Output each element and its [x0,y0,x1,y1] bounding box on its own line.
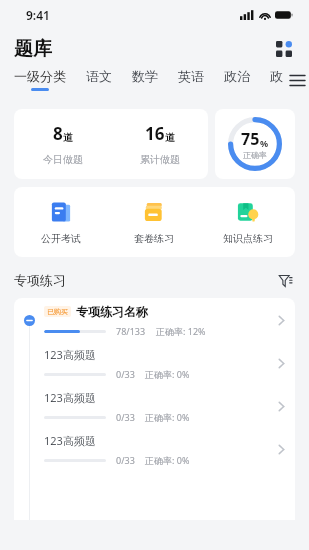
staticText: 专项练习 [14,272,66,288]
button[interactable]: 政 [263,68,290,88]
button[interactable]: 数学 [125,68,165,88]
staticText: 9:41 [26,7,50,23]
button[interactable]: 已购买 [14,298,295,342]
staticText: 8 [53,122,63,145]
staticText: 道 [165,131,175,144]
staticText: 0/33 [116,368,135,380]
staticText: 123高频题 [44,347,96,362]
button[interactable]: 套卷练习 [107,187,201,257]
staticText: % [260,137,269,149]
staticText: 正确率: 0% [145,411,190,423]
button[interactable]: 123高频题 [14,385,295,428]
staticText: 一级分类 [14,68,66,84]
staticText: 累计做题 [140,153,180,166]
staticText: 道 [63,131,73,144]
staticText: 公开考试 [41,232,81,245]
button[interactable]: 公开考试 [14,187,107,257]
button[interactable]: 75 [215,109,295,179]
button[interactable]: 筛选 [275,270,295,290]
button[interactable]: 政治 [217,68,257,88]
staticText: 英语 [178,68,204,84]
staticText: 0/33 [116,454,135,466]
staticText: 123高频题 [44,390,96,405]
staticText: 正确率: 0% [145,368,190,380]
staticText: 今日做题 [43,153,83,166]
staticText: 16 [145,122,165,145]
button[interactable]: 语文 [79,68,119,88]
button[interactable]: 123高频题 [14,428,295,471]
staticText: 78/133 [116,325,146,337]
staticText: 数学 [132,68,158,84]
staticText: 正确率 [243,150,267,160]
staticText: 政治 [224,68,250,84]
staticText: 正确率: 12% [156,325,206,337]
staticText: 已购买 [47,307,68,316]
button[interactable]: 8 [14,109,208,179]
button[interactable]: 英语 [171,68,211,88]
staticText: 专项练习名称 [76,304,148,319]
staticText: 语文 [86,68,112,84]
staticText: 75 [241,128,260,150]
button[interactable]: 知识点练习 [201,187,295,257]
staticText: 政 [270,68,283,84]
staticText: 知识点练习 [223,232,273,245]
staticText: 套卷练习 [134,232,174,245]
button[interactable]: 更多分类 [290,68,305,90]
button[interactable]: 一级分类 [14,68,66,91]
button[interactable]: 切换视图 [271,36,297,62]
staticText: 正确率: 0% [145,454,190,466]
staticText: 题库 [14,37,52,61]
button[interactable]: 123高频题 [14,342,295,385]
staticText: 123高频题 [44,433,96,448]
staticText: 0/33 [116,411,135,423]
